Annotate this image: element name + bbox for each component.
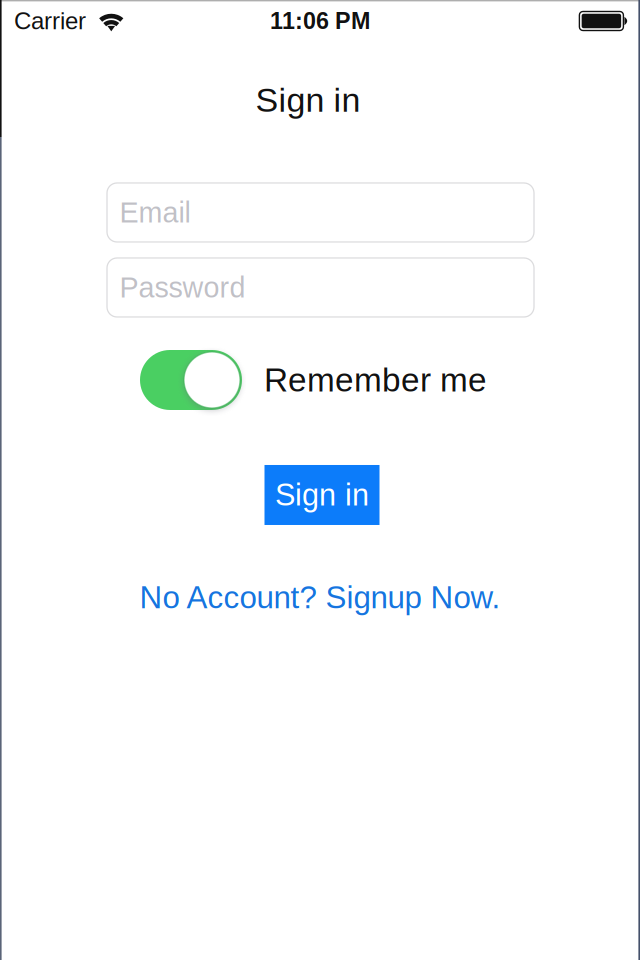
staticText: Carrier <box>14 8 86 34</box>
staticText: Email <box>119 196 190 228</box>
staticText: Sign in <box>275 478 369 512</box>
button[interactable]: Remember me <box>140 350 242 410</box>
button[interactable]: No Account? Signup Now. <box>139 580 500 615</box>
staticText: No Account? Signup Now. <box>139 580 500 615</box>
staticText: Remember me <box>264 361 487 399</box>
button[interactable]: Sign in <box>264 465 379 525</box>
staticText: Password <box>119 271 245 303</box>
staticText: Sign in <box>255 81 360 119</box>
staticText: 11:06 PM <box>270 8 370 34</box>
